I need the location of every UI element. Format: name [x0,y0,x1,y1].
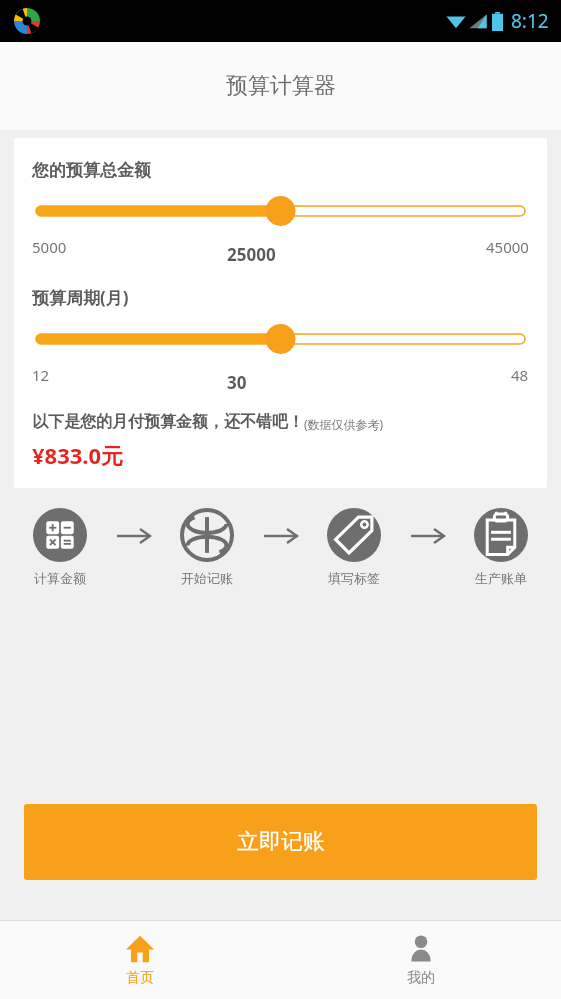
staticText: 预算周期(月) [32,286,129,309]
staticText: 25000 [227,243,276,266]
staticText: 8:12 [511,8,549,34]
button[interactable]: 生产账单 [455,508,547,586]
other: 我的 [406,934,436,964]
staticText: 48 [511,365,529,385]
staticText: 首页 [126,969,154,987]
other: 首页 [125,934,155,964]
button[interactable]: 填写标签 [308,508,400,586]
button[interactable]: 计算金额 [14,508,106,586]
staticText: 5000 [32,237,67,257]
other: 填写标签 [327,508,381,562]
staticText: 我的 [407,969,435,987]
staticText: 以下是您的月付预算金额，还不错吧！ [32,412,304,432]
staticText: 12 [32,365,50,385]
button[interactable] [32,195,529,227]
button[interactable]: 我的 [280,921,561,999]
staticText: 生产账单 [475,570,527,586]
staticText: ¥833.0元 [32,440,124,470]
staticText: 30 [227,371,247,394]
other: 计算金额 [33,508,87,562]
staticText: 填写标签 [328,570,380,586]
staticText: 立即记账 [237,828,325,856]
other: 生产账单 [474,508,528,562]
staticText: 预算计算器 [226,72,336,100]
button[interactable]: 立即记账 [24,804,537,880]
button[interactable]: 开始记账 [161,508,253,586]
staticText: 计算金额 [34,570,86,586]
button[interactable] [32,323,529,355]
staticText: 您的预算总金额 [32,160,151,181]
staticText: 开始记账 [181,570,233,586]
button[interactable]: 首页 [0,921,280,999]
staticText: (数据仅供参考) [304,416,384,432]
other: 开始记账 [180,508,234,562]
staticText: 45000 [486,237,529,257]
